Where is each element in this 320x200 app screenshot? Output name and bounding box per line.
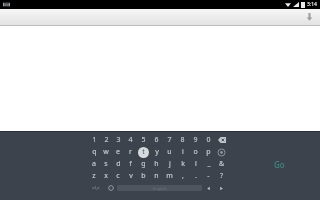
button[interactable]: Input settings: [104, 182, 117, 194]
button[interactable]: e: [112, 146, 124, 158]
staticText: f: [129, 159, 132, 169]
button[interactable]: f: [124, 158, 137, 170]
button[interactable]: o: [189, 146, 202, 158]
button[interactable]: h: [150, 158, 163, 170]
staticText: 0: [206, 135, 211, 145]
button[interactable]: _: [202, 158, 215, 170]
button[interactable]: 1: [88, 134, 100, 146]
staticText: t: [142, 147, 145, 157]
staticText: e: [116, 147, 120, 157]
staticText: m: [166, 171, 173, 181]
staticText: 1: [92, 135, 97, 145]
staticText: h: [154, 159, 159, 169]
button[interactable]: u: [163, 146, 176, 158]
button[interactable]: Download: [304, 12, 315, 23]
staticText: n: [154, 171, 159, 181]
button[interactable]: 2: [100, 134, 112, 146]
staticText: ,: [182, 171, 184, 181]
button[interactable]: r: [124, 146, 137, 158]
staticText: _: [207, 159, 211, 169]
button[interactable]: l: [189, 158, 202, 170]
button[interactable]: i: [176, 146, 189, 158]
staticText: English: [153, 186, 167, 191]
staticText: 3:14: [307, 1, 317, 8]
button[interactable]: g: [137, 158, 150, 170]
button[interactable]: b: [137, 170, 150, 182]
staticText: r: [129, 147, 132, 157]
button[interactable]: Move cursor left: [202, 182, 215, 194]
button[interactable]: Move cursor right: [215, 182, 228, 194]
staticText: 2: [104, 135, 109, 145]
staticText: s: [104, 159, 108, 169]
staticText: .: [195, 171, 197, 181]
staticText: d: [116, 159, 121, 169]
button[interactable]: k: [176, 158, 189, 170]
button[interactable]: ,: [176, 170, 189, 182]
staticText: 3: [116, 135, 121, 145]
staticText: y: [155, 147, 159, 157]
button[interactable]: Backspace: [215, 134, 228, 146]
button[interactable]: a: [88, 158, 100, 170]
staticText: =\<: [92, 185, 100, 192]
staticText: &: [219, 159, 225, 169]
staticText: u: [167, 147, 172, 157]
button[interactable]: Go: [268, 158, 290, 170]
staticText: w: [103, 147, 109, 157]
staticText: a: [92, 159, 96, 169]
button[interactable]: At sign: [215, 146, 228, 158]
button[interactable]: Ampersand: [215, 158, 228, 170]
button[interactable]: =\<: [88, 182, 104, 194]
button[interactable]: 4: [124, 134, 137, 146]
button[interactable]: 3: [112, 134, 124, 146]
staticText: 9: [193, 135, 198, 145]
button[interactable]: x: [100, 170, 112, 182]
staticText: v: [129, 171, 133, 181]
button[interactable]: q: [88, 146, 100, 158]
button[interactable]: 5: [137, 134, 150, 146]
button[interactable]: p: [202, 146, 215, 158]
button[interactable]: Question mark: [215, 170, 228, 182]
staticText: i: [182, 147, 184, 157]
staticText: g: [141, 159, 146, 169]
button[interactable]: -: [202, 170, 215, 182]
staticText: 4: [128, 135, 133, 145]
staticText: 8: [180, 135, 185, 145]
button[interactable]: n: [150, 170, 163, 182]
staticText: p: [206, 147, 211, 157]
staticText: c: [116, 171, 120, 181]
button[interactable]: 6: [150, 134, 163, 146]
staticText: k: [181, 159, 185, 169]
button[interactable]: y: [150, 146, 163, 158]
staticText: 7: [167, 135, 172, 145]
button[interactable]: j: [163, 158, 176, 170]
staticText: l: [195, 159, 197, 169]
button[interactable]: .: [189, 170, 202, 182]
button[interactable]: d: [112, 158, 124, 170]
button[interactable]: m: [163, 170, 176, 182]
staticText: -: [207, 171, 210, 181]
staticText: Go: [274, 159, 285, 170]
button[interactable]: 0: [202, 134, 215, 146]
staticText: x: [104, 171, 108, 181]
staticText: q: [92, 147, 97, 157]
button[interactable]: v: [124, 170, 137, 182]
staticText: o: [193, 147, 198, 157]
staticText: 5: [141, 135, 146, 145]
staticText: b: [141, 171, 146, 181]
button[interactable]: s: [100, 158, 112, 170]
button[interactable]: 7: [163, 134, 176, 146]
button[interactable]: 9: [189, 134, 202, 146]
button[interactable]: z: [88, 170, 100, 182]
button[interactable]: w: [100, 146, 112, 158]
staticText: j: [169, 159, 171, 169]
staticText: 6: [154, 135, 159, 145]
button[interactable]: c: [112, 170, 124, 182]
button[interactable]: t: [137, 146, 150, 158]
staticText: ?: [220, 171, 224, 181]
button[interactable]: 8: [176, 134, 189, 146]
staticText: z: [92, 171, 96, 181]
